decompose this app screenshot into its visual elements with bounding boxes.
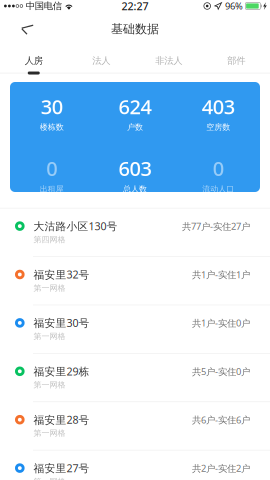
staticText: 户数 xyxy=(127,122,143,132)
button[interactable]: 福安里32号 xyxy=(0,257,270,305)
staticText: 共77户-实住27户 xyxy=(182,220,250,232)
staticText: 第一网格 xyxy=(33,283,65,293)
staticText: 福安里27号 xyxy=(33,461,89,475)
staticText: 中国电信 xyxy=(26,0,62,12)
staticText: 共2户-实住2户 xyxy=(192,462,250,474)
staticText: 共1户-实住1户 xyxy=(192,268,250,281)
staticText: 福安里30号 xyxy=(33,316,89,330)
staticText: 624 xyxy=(118,93,151,120)
staticText: 共6户-实住6户 xyxy=(192,414,250,426)
staticText: 基础数据 xyxy=(111,22,159,36)
staticText: 第四网格 xyxy=(33,235,65,244)
button[interactable]: 法人 xyxy=(67,44,135,74)
staticText: 0 xyxy=(213,155,224,182)
button[interactable]: 非法人 xyxy=(135,44,202,74)
button[interactable]: 福安里29栋 xyxy=(0,354,270,401)
staticText: 30 xyxy=(41,93,63,120)
button[interactable]: 福安里28号 xyxy=(0,402,270,450)
button[interactable]: 返回 xyxy=(0,13,40,44)
staticText: 第一网格 xyxy=(33,380,65,390)
staticText: 总人数 xyxy=(123,184,147,194)
staticText: 96% xyxy=(225,0,243,12)
staticText: 人房 xyxy=(25,55,43,66)
button[interactable]: 大沽路小区130号 xyxy=(0,208,270,256)
staticText: 法人 xyxy=(92,55,110,66)
staticText: 第一网格 xyxy=(33,331,65,341)
staticText: 楼栋数 xyxy=(40,122,64,132)
button[interactable]: 福安里27号 xyxy=(0,450,270,480)
staticText: 出租屋 xyxy=(40,184,64,194)
button[interactable]: 人房 xyxy=(0,44,67,74)
staticText: 福安里32号 xyxy=(33,267,89,282)
staticText: 第一网格 xyxy=(33,477,65,480)
staticText: 第一网格 xyxy=(33,428,65,438)
staticText: 22:27 xyxy=(121,0,148,13)
button[interactable]: 部件 xyxy=(202,44,270,74)
staticText: 部件 xyxy=(227,55,245,66)
staticText: 流动人口 xyxy=(202,184,234,194)
staticText: 共1户-实住0户 xyxy=(192,317,250,329)
staticText: 0 xyxy=(46,155,57,182)
staticText: 非法人 xyxy=(155,55,182,66)
staticText: 大沽路小区130号 xyxy=(33,219,117,233)
staticText: 共5户-实住0户 xyxy=(192,365,250,378)
staticText: 福安里28号 xyxy=(33,413,89,427)
staticText: 603 xyxy=(118,155,151,182)
staticText: 403 xyxy=(202,93,235,120)
staticText: 福安里29栋 xyxy=(33,364,89,378)
button[interactable]: 福安里30号 xyxy=(0,305,270,353)
staticText: 空房数 xyxy=(206,122,230,132)
